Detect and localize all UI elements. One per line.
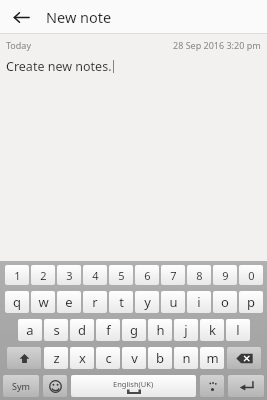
staticText: t (119, 293, 124, 311)
button[interactable]: c (96, 347, 120, 369)
staticText: g (130, 321, 138, 339)
staticText: d (78, 321, 86, 339)
staticText: k (209, 321, 216, 339)
button[interactable]: a (18, 319, 42, 341)
button[interactable]: English(UK) (71, 375, 196, 397)
staticText: u (169, 293, 178, 311)
staticText: i (197, 293, 201, 311)
staticText: q (13, 293, 21, 311)
button[interactable]: Backspace (227, 347, 261, 369)
button[interactable]: p (239, 291, 263, 313)
staticText: 6 (144, 268, 151, 283)
button[interactable]: h (148, 319, 172, 341)
button[interactable]: q (5, 291, 29, 313)
button[interactable]: o (213, 291, 237, 313)
staticText: 5 (118, 268, 125, 283)
button[interactable]: x (70, 347, 94, 369)
button[interactable]: 0 (239, 265, 263, 285)
staticText: l (236, 321, 240, 339)
staticText: f (106, 321, 111, 339)
button[interactable]: 7 (161, 265, 185, 285)
button[interactable]: e (57, 291, 81, 313)
staticText: 2 (40, 268, 47, 283)
staticText: Create new notes. (6, 58, 112, 75)
staticText: 4 (92, 268, 99, 283)
staticText: English(UK) (113, 379, 154, 389)
button[interactable]: s (44, 319, 68, 341)
button[interactable]: f (96, 319, 120, 341)
button[interactable]: Period (200, 375, 224, 397)
button[interactable]: z (44, 347, 68, 369)
button[interactable]: j (174, 319, 198, 341)
button[interactable]: b (148, 347, 172, 369)
button[interactable]: y (135, 291, 159, 313)
button[interactable]: d (70, 319, 94, 341)
button[interactable]: 6 (135, 265, 159, 285)
button[interactable]: i (187, 291, 211, 313)
button[interactable]: Back (6, 2, 36, 32)
staticText: 0 (248, 268, 255, 283)
staticText: o (221, 293, 229, 311)
staticText: x (79, 349, 86, 367)
staticText: n (182, 349, 191, 367)
button[interactable]: 3 (57, 265, 81, 285)
button[interactable]: 2 (31, 265, 55, 285)
staticText: 1 (14, 268, 21, 283)
staticText: 3 (66, 268, 73, 283)
staticText: h (156, 321, 165, 339)
button[interactable]: Sym (3, 375, 39, 397)
button[interactable]: 5 (109, 265, 133, 285)
button[interactable]: w (31, 291, 55, 313)
staticText: p (247, 293, 255, 311)
staticText: 7 (170, 268, 177, 283)
staticText: 8 (196, 268, 203, 283)
staticText: m (206, 349, 219, 367)
staticText: a (26, 321, 34, 339)
button[interactable]: Shift (7, 347, 41, 369)
button[interactable]: m (200, 347, 224, 369)
staticText: v (131, 349, 138, 367)
button[interactable]: l (226, 319, 250, 341)
button[interactable]: Emoji (43, 375, 67, 397)
button[interactable]: 1 (5, 265, 29, 285)
button[interactable]: n (174, 347, 198, 369)
staticText: s (53, 321, 60, 339)
button[interactable]: g (122, 319, 146, 341)
button[interactable]: Enter (228, 375, 264, 397)
staticText: New note (46, 7, 112, 27)
staticText: w (38, 293, 49, 311)
staticText: 28 Sep 2016 3:20 pm (173, 39, 261, 51)
button[interactable]: r (83, 291, 107, 313)
staticText: Today (6, 39, 31, 51)
button[interactable]: 9 (213, 265, 237, 285)
button[interactable]: k (200, 319, 224, 341)
button[interactable]: v (122, 347, 146, 369)
button[interactable]: u (161, 291, 185, 313)
staticText: b (156, 349, 164, 367)
button[interactable]: t (109, 291, 133, 313)
button[interactable]: 4 (83, 265, 107, 285)
staticText: c (105, 349, 112, 367)
staticText: e (65, 293, 73, 311)
staticText: r (92, 293, 98, 311)
staticText: j (184, 321, 188, 339)
staticText: Sym (12, 380, 30, 392)
staticText: z (53, 349, 60, 367)
staticText: y (144, 293, 151, 311)
staticText: 9 (222, 268, 229, 283)
button[interactable]: 8 (187, 265, 211, 285)
